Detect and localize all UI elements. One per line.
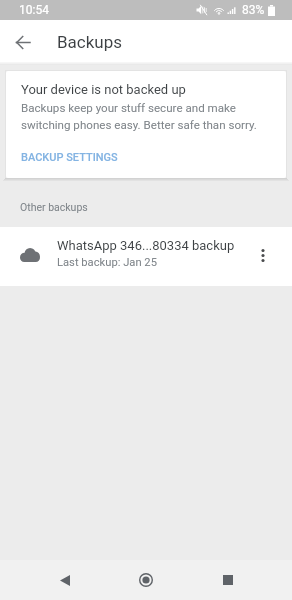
button[interactable]: More options [247, 227, 279, 284]
staticText: Your device is not backed up [21, 82, 186, 97]
staticText: Backups [57, 32, 123, 52]
button[interactable]: BACKUP SETTINGS [21, 151, 118, 164]
staticText: WhatsApp 346...80334 backup [57, 238, 235, 253]
staticText: Other backups [20, 201, 88, 213]
staticText: Last backup: Jan 25 [57, 256, 157, 269]
staticText: 83% [242, 3, 265, 17]
staticText: Backups keep your stuff secure and make … [21, 101, 271, 132]
button[interactable]: Recent apps [208, 560, 248, 600]
staticText: 10:54 [19, 3, 49, 17]
button[interactable]: Back [45, 560, 85, 600]
button[interactable]: Home [126, 560, 166, 600]
staticText: BACKUP SETTINGS [21, 151, 118, 164]
button[interactable]: Navigate up [1, 20, 45, 64]
button[interactable]: WhatsApp 346...80334 backup [0, 227, 292, 286]
